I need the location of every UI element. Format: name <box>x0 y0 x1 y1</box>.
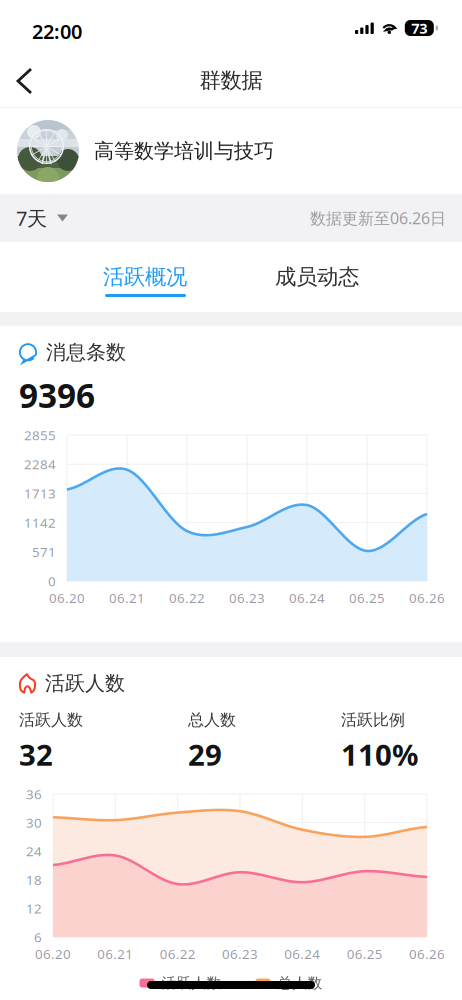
staticText: 30 <box>26 814 42 831</box>
staticText: 2284 <box>24 455 56 473</box>
staticText: 06.22 <box>160 945 196 963</box>
button[interactable]: 活跃概况 <box>86 242 204 312</box>
staticText: 活跃人数 <box>45 671 125 696</box>
staticText: 24 <box>26 842 42 860</box>
staticText: 06.22 <box>169 589 205 607</box>
staticText: 消息条数 <box>46 340 126 365</box>
staticText: 1142 <box>24 514 56 531</box>
staticText: 高等数学培训与技巧 <box>94 139 274 163</box>
staticText: 22:00 <box>32 18 82 45</box>
staticText: 6 <box>34 928 42 946</box>
staticText: 06.25 <box>349 589 385 607</box>
staticText: 06.24 <box>289 589 325 607</box>
staticText: 06.26 <box>409 589 445 607</box>
staticText: 06.21 <box>97 945 133 963</box>
staticText: 总人数 <box>277 974 322 992</box>
staticText: 成员动态 <box>275 264 359 290</box>
staticText: 群数据 <box>199 67 262 94</box>
staticText: 2855 <box>24 426 56 444</box>
staticText: 06.24 <box>284 945 320 963</box>
staticText: 73 <box>411 18 427 38</box>
button[interactable]: Back <box>0 55 52 107</box>
staticText: 活跃人数 <box>19 710 83 730</box>
staticText: 总人数 <box>188 710 236 730</box>
staticText: 36 <box>26 785 42 803</box>
staticText: 9396 <box>19 373 95 417</box>
staticText: 活跃人数 <box>161 974 221 992</box>
staticText: 12 <box>26 899 42 917</box>
button[interactable]: 成员动态 <box>258 242 376 312</box>
staticText: 06.23 <box>229 589 265 607</box>
staticText: 06.23 <box>222 945 258 963</box>
staticText: 0 <box>48 572 56 590</box>
staticText: 18 <box>26 871 42 889</box>
staticText: 06.21 <box>109 589 145 607</box>
staticText: 活跃概况 <box>103 264 187 290</box>
staticText: 06.20 <box>35 945 71 963</box>
staticText: 32 <box>19 735 53 774</box>
staticText: 1713 <box>24 484 56 502</box>
staticText: 数据更新至06.26日 <box>310 207 446 229</box>
staticText: 活跃比例 <box>341 710 405 730</box>
staticText: 06.20 <box>49 589 85 607</box>
button[interactable]: 7天 <box>0 192 86 244</box>
staticText: 110% <box>341 735 418 774</box>
staticText: 06.25 <box>347 945 383 963</box>
staticText: 571 <box>32 543 56 561</box>
staticText: 29 <box>188 735 222 774</box>
staticText: 7天 <box>16 205 47 231</box>
staticText: 06.26 <box>409 945 445 963</box>
